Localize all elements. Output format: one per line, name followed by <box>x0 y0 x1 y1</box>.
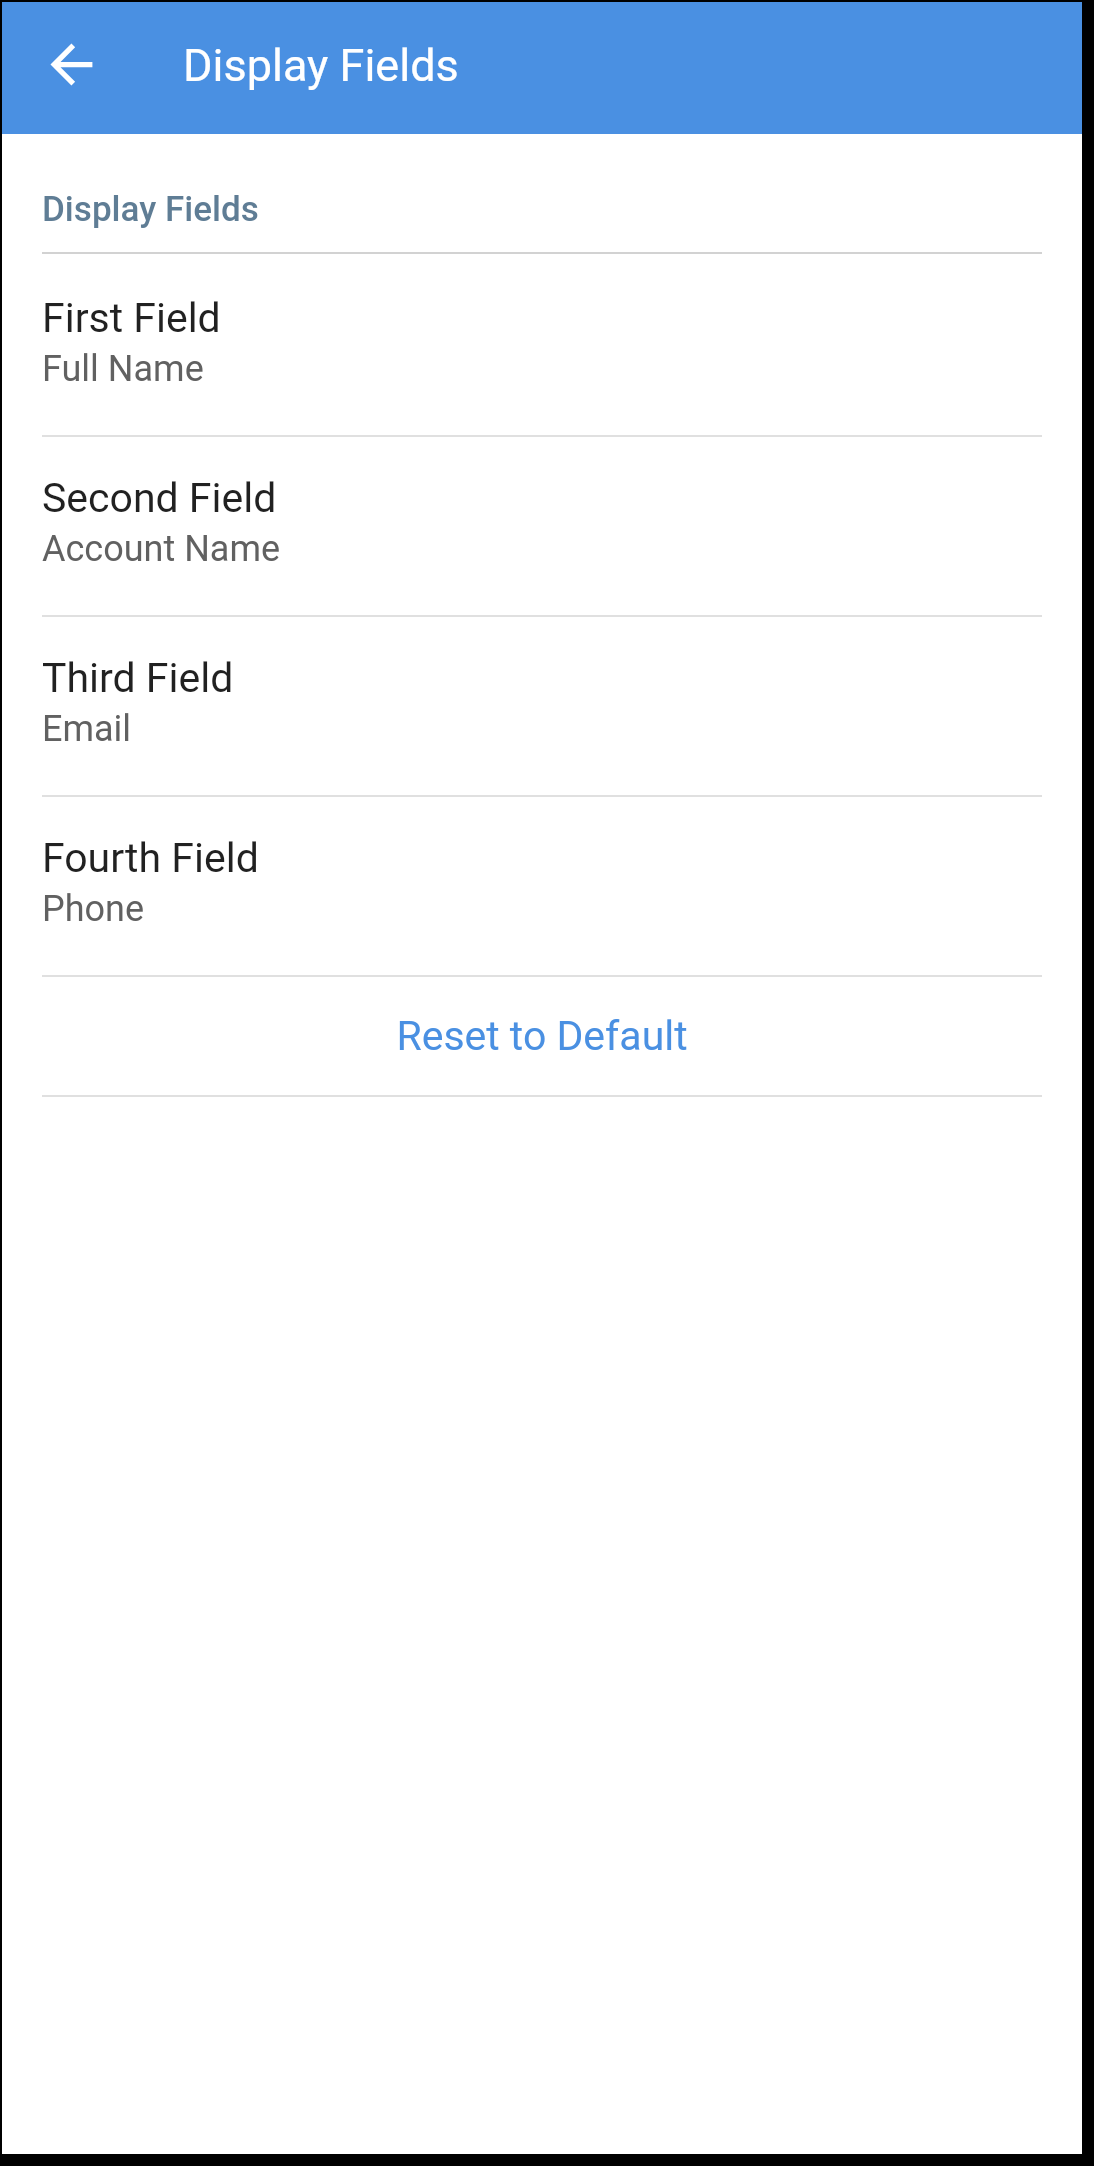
button[interactable]: Navigate up <box>2 2 134 134</box>
staticText: Display Fields <box>183 39 459 92</box>
staticText: Phone <box>42 888 145 930</box>
staticText: Full Name <box>42 348 204 390</box>
button[interactable] <box>2 434 1082 615</box>
button[interactable]: Reset to Default <box>2 976 1082 1096</box>
staticText: Reset to Default <box>396 1012 688 1060</box>
staticText: Email <box>42 708 132 750</box>
button[interactable] <box>2 614 1082 795</box>
staticText: Third Field <box>42 654 234 702</box>
button[interactable] <box>2 254 1082 435</box>
staticText: Account Name <box>42 528 281 570</box>
staticText: Second Field <box>42 474 277 522</box>
staticText: Display Fields <box>42 189 259 230</box>
staticText: Fourth Field <box>42 834 259 882</box>
staticText: First Field <box>42 294 221 342</box>
button[interactable] <box>2 794 1082 975</box>
